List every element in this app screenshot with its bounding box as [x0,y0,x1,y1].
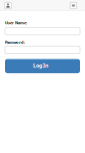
button[interactable]: Account [5,2,11,9]
staticText: Password: [5,40,25,45]
staticText: Log In [33,62,48,69]
button[interactable]: Log In [5,59,80,73]
button[interactable]: Menu [70,2,77,9]
staticText: User Name: [5,20,27,25]
